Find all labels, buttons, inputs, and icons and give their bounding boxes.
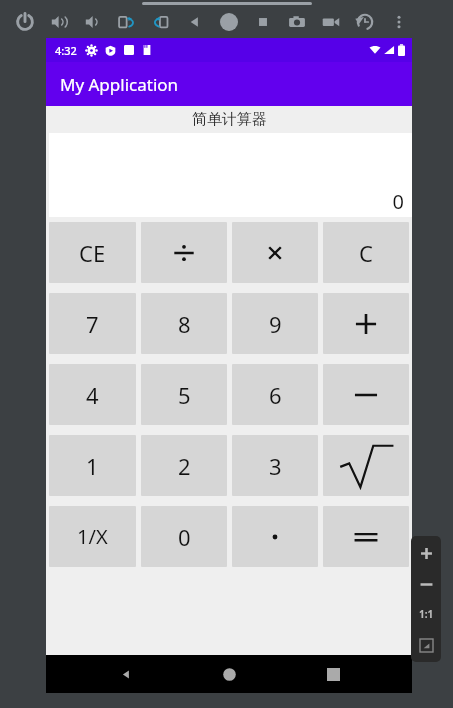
button[interactable] <box>323 364 409 425</box>
staticText: 4:32 <box>55 43 77 58</box>
staticText: 3 <box>269 451 282 481</box>
staticText: 7 <box>86 309 99 339</box>
button[interactable]: 8 <box>141 293 227 354</box>
button[interactable]: 6 <box>232 364 318 425</box>
button[interactable]: Volume down <box>76 9 110 35</box>
staticText: 8 <box>178 309 191 339</box>
button[interactable]: Fit to screen <box>413 632 439 658</box>
button[interactable]: 4 <box>49 364 136 425</box>
button[interactable]: 0 <box>141 506 227 567</box>
button[interactable] <box>232 222 318 283</box>
staticText: 0 <box>392 188 404 215</box>
staticText: 简单计算器 <box>192 110 267 129</box>
staticText: 2 <box>178 451 191 481</box>
staticText: 5 <box>178 380 191 410</box>
button[interactable]: Record <box>314 9 348 35</box>
button[interactable]: 7 <box>49 293 136 354</box>
button[interactable]: 9 <box>232 293 318 354</box>
button[interactable]: Back <box>178 9 212 35</box>
button[interactable]: Rotate right <box>144 9 178 35</box>
staticText: 0 <box>178 522 191 552</box>
button[interactable]: History <box>348 9 382 35</box>
button[interactable]: More <box>382 9 416 35</box>
staticText: 4 <box>86 380 99 410</box>
staticText: 9 <box>269 309 282 339</box>
button[interactable]: Rotate left <box>110 9 144 35</box>
staticText: CE <box>79 238 106 268</box>
button[interactable]: Volume up <box>42 9 76 35</box>
button[interactable]: C <box>323 222 409 283</box>
staticText: 1:1 <box>419 607 434 621</box>
button[interactable]: 1/X <box>49 506 136 567</box>
button[interactable]: 1 <box>49 435 136 496</box>
button[interactable]: Power <box>8 9 42 35</box>
button[interactable] <box>232 506 318 567</box>
button[interactable] <box>141 222 227 283</box>
button[interactable]: 2 <box>141 435 227 496</box>
button[interactable]: Zoom in <box>413 540 439 566</box>
button[interactable]: Home <box>205 655 253 693</box>
button[interactable] <box>323 506 409 567</box>
staticText: 1/X <box>77 523 108 550</box>
button[interactable] <box>323 293 409 354</box>
button[interactable]: 1:1 <box>413 601 439 627</box>
staticText: My Application <box>60 73 179 96</box>
button[interactable]: Overview <box>246 9 280 35</box>
button[interactable]: Recent apps <box>309 655 357 693</box>
staticText: 6 <box>269 380 282 410</box>
button[interactable]: Back <box>102 655 150 693</box>
button[interactable]: Square root <box>323 435 409 496</box>
button[interactable]: Screenshot <box>280 9 314 35</box>
button[interactable]: Home <box>212 9 246 35</box>
button[interactable]: CE <box>49 222 136 283</box>
staticText: 1 <box>86 451 99 481</box>
button[interactable]: Zoom out <box>413 571 439 597</box>
button[interactable]: 5 <box>141 364 227 425</box>
button[interactable]: 3 <box>232 435 318 496</box>
staticText: C <box>359 238 373 268</box>
